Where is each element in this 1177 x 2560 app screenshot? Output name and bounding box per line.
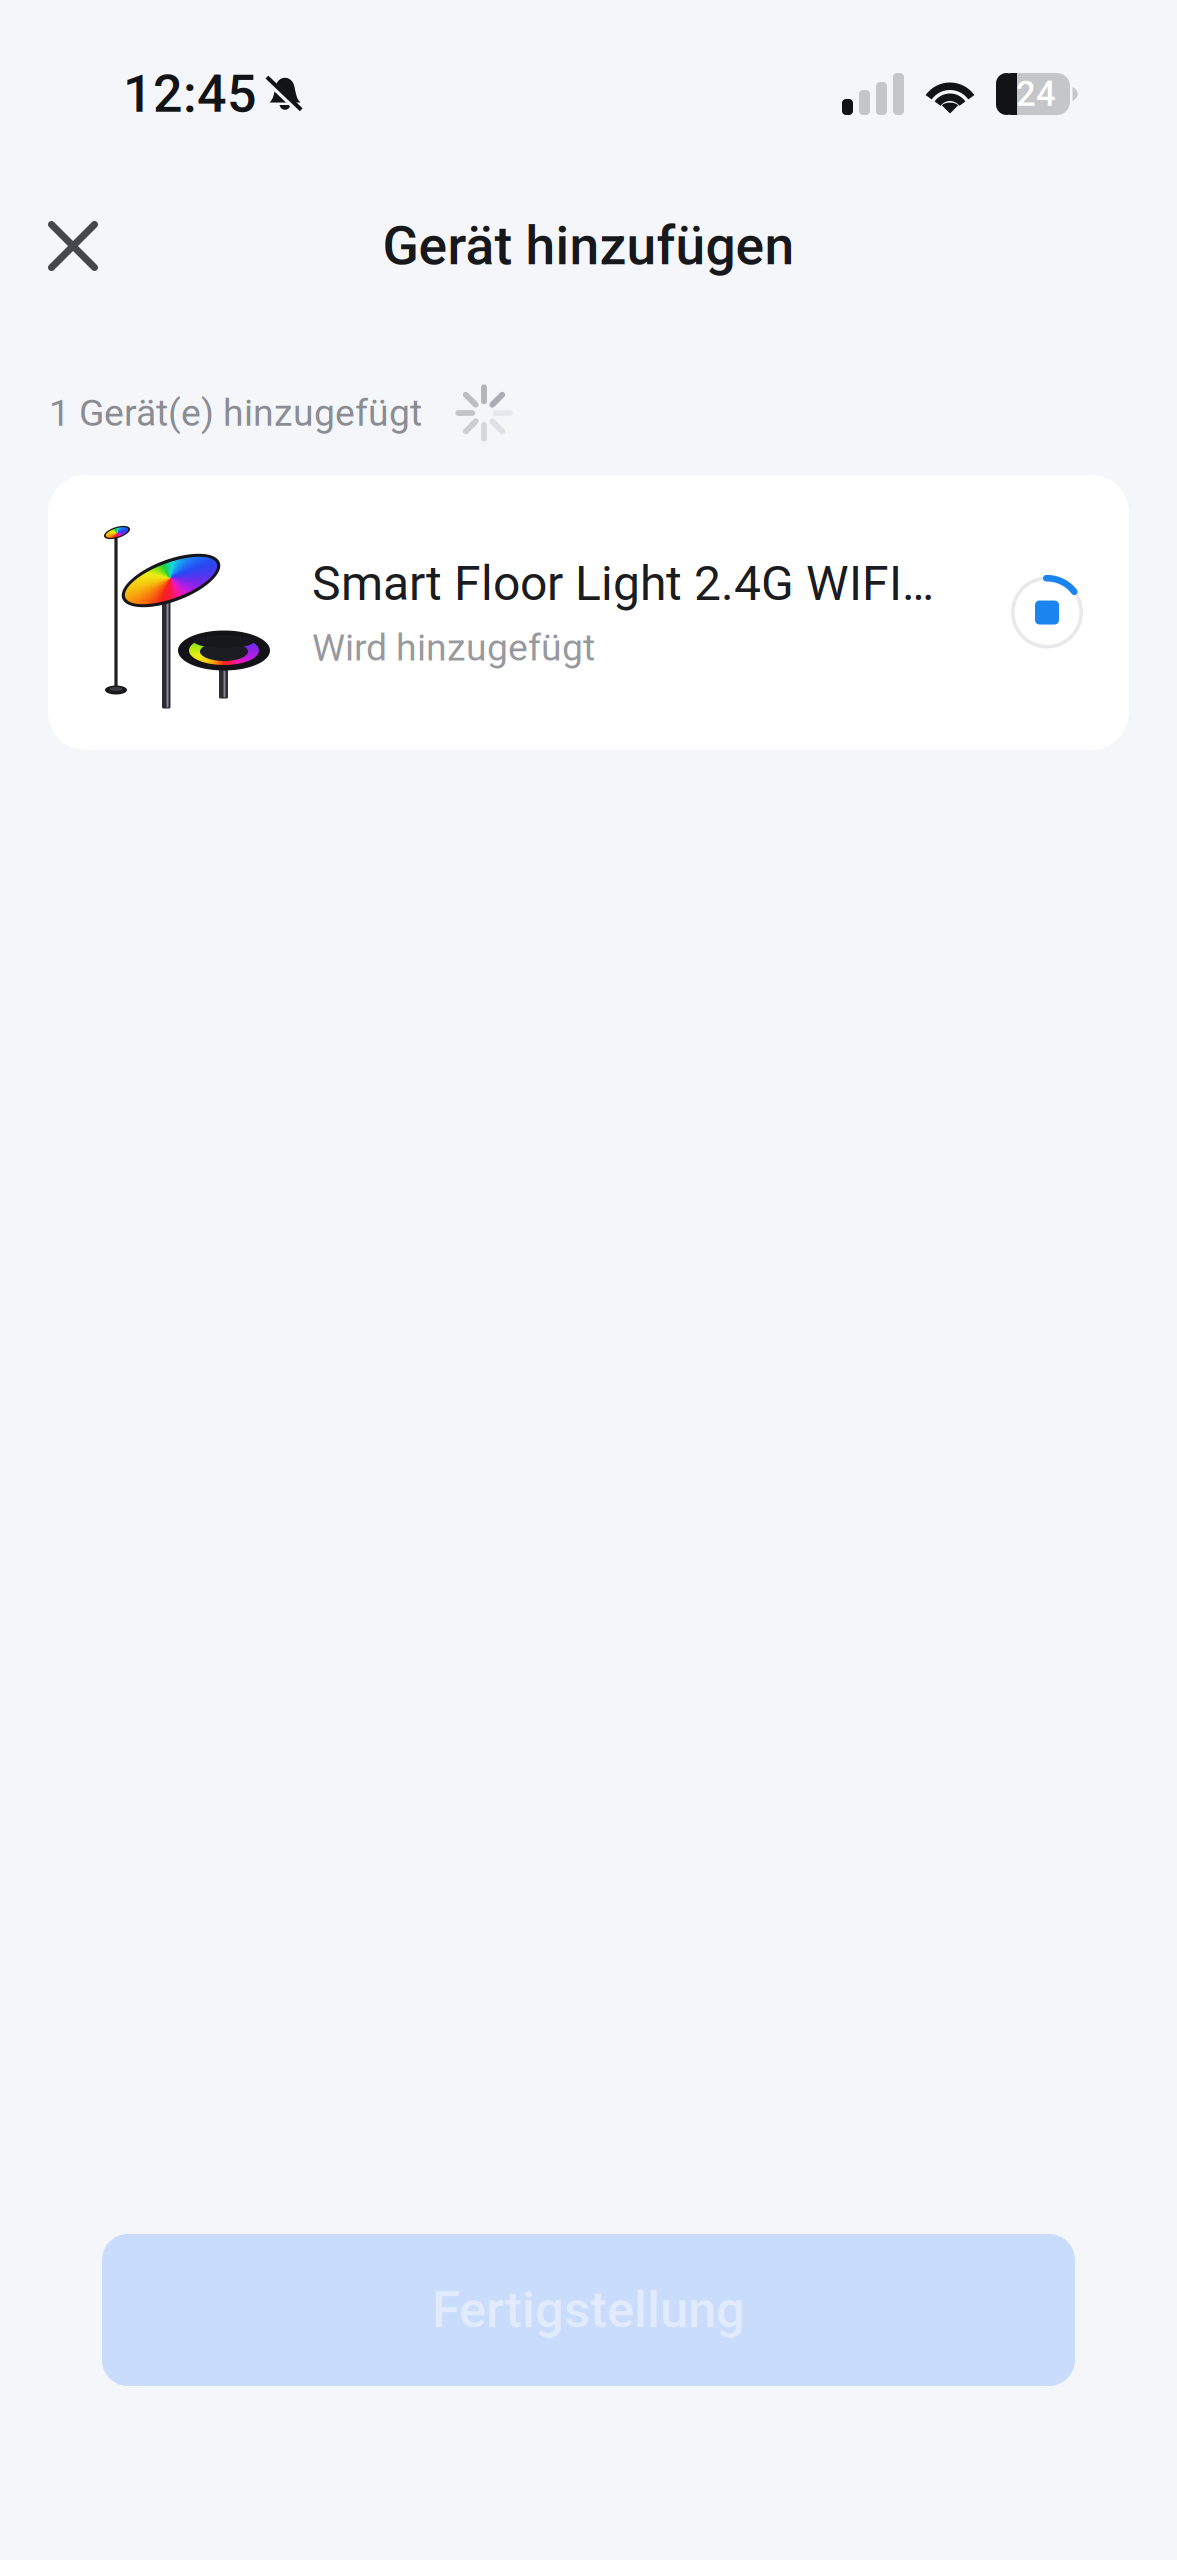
button[interactable]: Smart Floor Light 2.4G WIFI… [48,475,1129,750]
button[interactable]: Schließen [25,198,121,294]
staticText: 1 Gerät(e) hinzugefügt [49,391,422,435]
staticText: Wird hinzugefügt [312,626,595,669]
staticText: Smart Floor Light 2.4G WIFI… [312,555,934,612]
staticText: Gerät hinzufügen [382,215,794,277]
staticText: 24 [1016,74,1056,114]
staticText: Fertigstellung [432,2280,745,2340]
button[interactable]: Fertigstellung [102,2234,1075,2386]
staticText: 12:45 [123,63,257,124]
